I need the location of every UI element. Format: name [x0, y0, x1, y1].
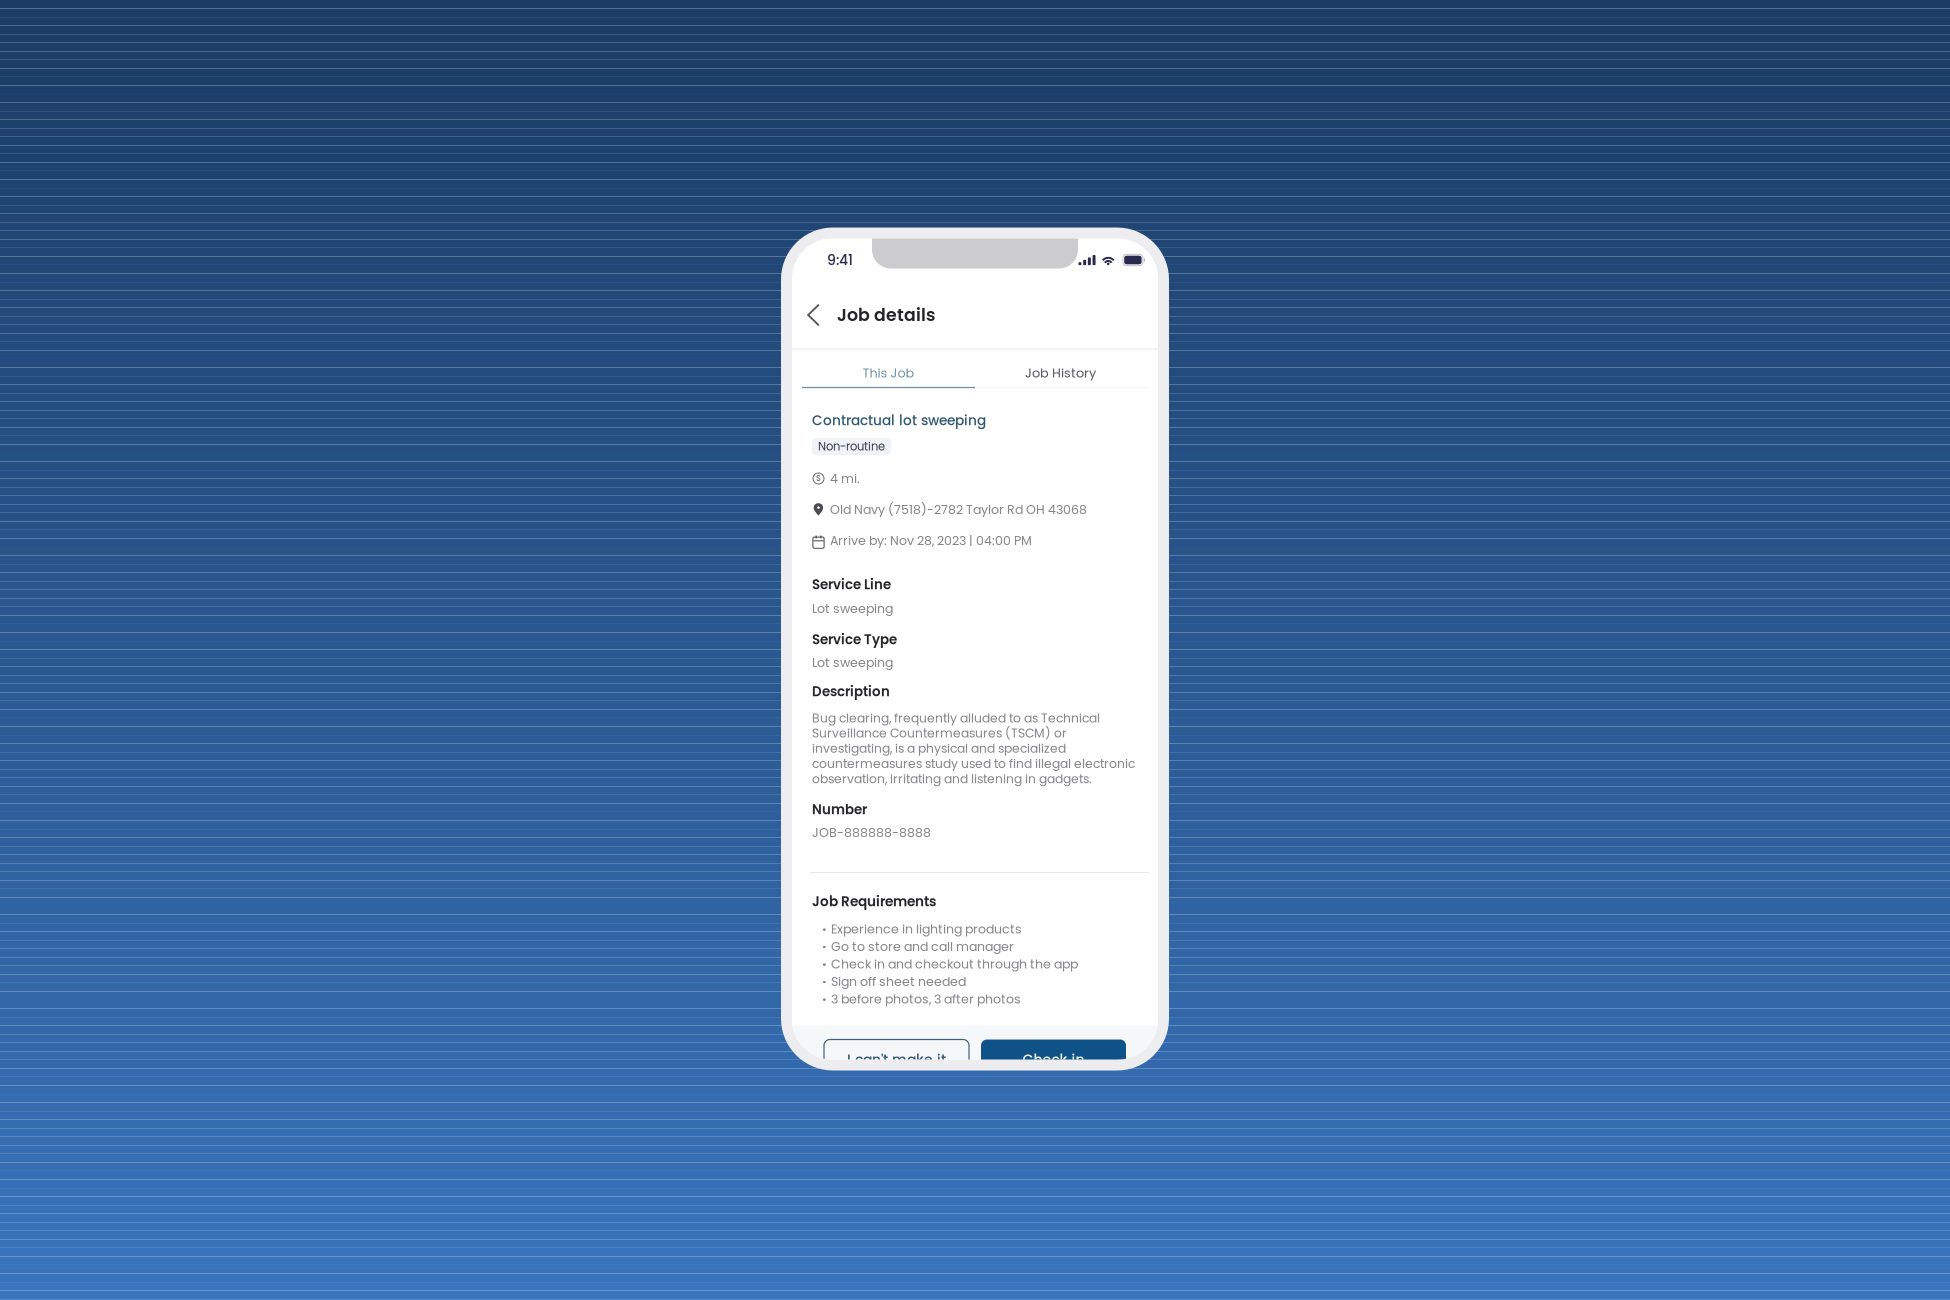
button[interactable]: Back — [800, 293, 827, 337]
staticText: Lot sweeping — [812, 654, 893, 671]
staticText: Lot sweeping — [812, 600, 893, 617]
staticText: • — [822, 991, 827, 1007]
staticText: Description — [812, 682, 890, 701]
staticText: Contractual lot sweeping — [812, 411, 986, 430]
staticText: • — [822, 956, 827, 972]
staticText: This Job — [862, 364, 914, 382]
button[interactable]: I can't make it — [824, 1039, 969, 1079]
staticText: Number — [812, 800, 867, 819]
staticText: Non-routine — [818, 438, 885, 455]
staticText: Bug clearing, frequently alluded to as T… — [812, 710, 1135, 787]
staticText: Arrive by: Nov 28, 2023 | 04:00 PM — [830, 532, 1032, 549]
staticText: • — [822, 939, 827, 954]
staticText: Service Type — [812, 630, 897, 649]
staticText: Experience in lighting products — [831, 920, 1022, 938]
staticText: Job Requirements — [812, 892, 936, 911]
button[interactable]: Job History — [975, 349, 1158, 388]
staticText: Go to store and call manager — [831, 938, 1014, 955]
staticText: • — [822, 921, 827, 937]
button[interactable]: This Job — [792, 349, 975, 388]
staticText: S — [816, 473, 821, 484]
staticText: Job History — [1025, 364, 1096, 382]
staticText: • — [822, 974, 827, 989]
button[interactable]: Check in — [981, 1039, 1126, 1079]
staticText: 4 mi. — [830, 470, 860, 487]
staticText: 3 before photos, 3 after photos — [831, 990, 1021, 1008]
staticText: Check in — [1022, 1050, 1084, 1069]
staticText: Sign off sheet needed — [831, 973, 966, 990]
staticText: Check in and checkout through the app — [831, 955, 1078, 973]
staticText: 9:41 — [827, 250, 853, 270]
staticText: JOB-888888-8888 — [812, 824, 931, 841]
staticText: Service Line — [812, 575, 891, 594]
staticText: I can't make it — [847, 1050, 946, 1069]
staticText: Old Navy (7518)-2782 Taylor Rd OH 43068 — [830, 501, 1087, 518]
staticText: Job details — [837, 303, 935, 327]
